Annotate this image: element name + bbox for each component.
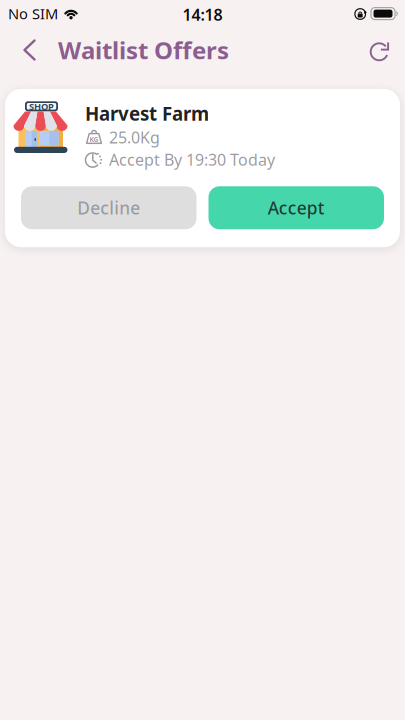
button[interactable]: Refresh: [358, 29, 405, 71]
staticText: 25.0Kg: [109, 127, 160, 148]
button[interactable]: Back: [0, 29, 47, 71]
staticText: Accept: [268, 196, 325, 219]
button[interactable]: Accept: [208, 186, 384, 229]
staticText: Harvest Farm: [85, 101, 209, 126]
staticText: SHOP: [29, 100, 54, 112]
staticText: KG: [89, 135, 98, 144]
staticText: No SIM: [8, 4, 58, 23]
staticText: Waitlist Offers: [58, 34, 229, 66]
staticText: Accept By 19:30 Today: [109, 149, 275, 170]
staticText: Decline: [77, 196, 140, 219]
staticText: 14:18: [182, 4, 222, 25]
button[interactable]: Decline: [21, 186, 196, 229]
